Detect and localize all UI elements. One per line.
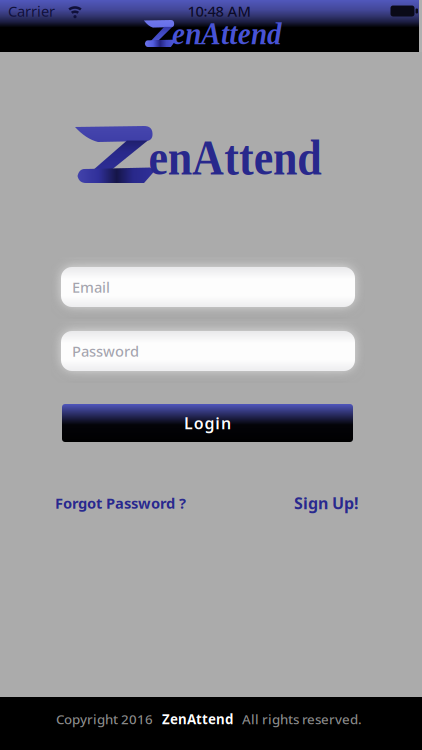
staticText: ZenAttend [162,710,233,728]
staticText: 10:48 AM [187,1,250,21]
textField[interactable] [72,277,361,297]
staticText: enAttend [172,16,289,51]
staticText: All rights reserved. [242,710,362,728]
staticText: Password [72,341,139,361]
staticText: Email [72,277,110,297]
button[interactable]: Forgot Password ? [55,493,186,513]
button[interactable]: Sign Up! [281,493,371,513]
textField[interactable] [72,341,361,361]
button[interactable]: Login [62,404,353,442]
staticText: Forgot Password ? [55,493,186,513]
staticText: Sign Up! [294,492,359,514]
staticText: Carrier [8,1,55,21]
staticText: Copyright 2016 [56,710,153,728]
staticText: Login [184,412,231,434]
button[interactable]: enAttend [143,20,283,48]
staticText [72,341,76,361]
staticText: enAttend [148,129,347,185]
staticText [72,277,76,297]
